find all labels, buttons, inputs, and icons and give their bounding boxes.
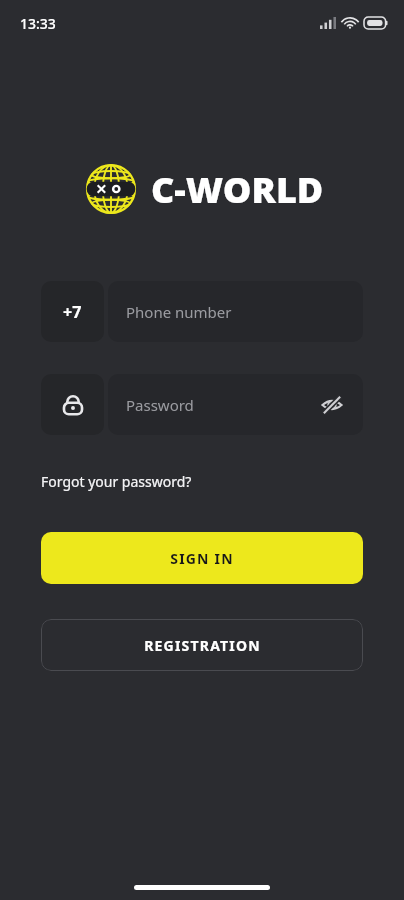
button[interactable]: +7 [41,281,104,342]
button[interactable]: Show password [315,388,349,422]
button[interactable]: Password [108,374,363,435]
staticText: REGISTRATION [144,636,261,655]
staticText: 13:33 [20,14,56,33]
staticText: Forgot your password? [41,472,192,491]
staticText: +7 [63,301,82,323]
button[interactable]: SIGN IN [41,532,363,584]
button[interactable]: Phone number [108,281,363,342]
button[interactable]: REGISTRATION [41,619,363,671]
button[interactable]: Forgot your password? [41,469,192,494]
staticText: Password [126,395,194,415]
button[interactable]: Password field [41,374,104,435]
staticText: SIGN IN [170,549,234,568]
staticText: Phone number [126,302,232,322]
staticText: C-WORLD [151,165,324,214]
